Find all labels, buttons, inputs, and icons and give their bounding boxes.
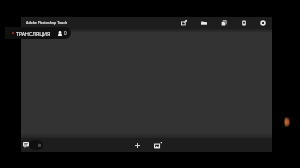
staticText: Adobe Photoshop Touch bbox=[26, 20, 68, 25]
button[interactable]: Open panel bbox=[281, 113, 292, 131]
button[interactable]: Reactions bbox=[29, 140, 43, 150]
button[interactable]: ТРАНСЛЯЦИЯ bbox=[5, 27, 71, 39]
button[interactable]: Save bbox=[234, 17, 254, 29]
button[interactable]: Duplicate bbox=[214, 17, 234, 29]
button[interactable]: Open folder bbox=[194, 17, 214, 29]
button[interactable]: Export bbox=[174, 17, 194, 29]
staticText: ТРАНСЛЯЦИЯ bbox=[16, 30, 51, 37]
button[interactable]: Add image bbox=[151, 138, 164, 152]
button[interactable]: Settings bbox=[254, 17, 272, 29]
staticText: 0 bbox=[64, 30, 67, 36]
button[interactable]: Chat bbox=[21, 138, 30, 152]
button[interactable]: Add bbox=[131, 138, 144, 152]
